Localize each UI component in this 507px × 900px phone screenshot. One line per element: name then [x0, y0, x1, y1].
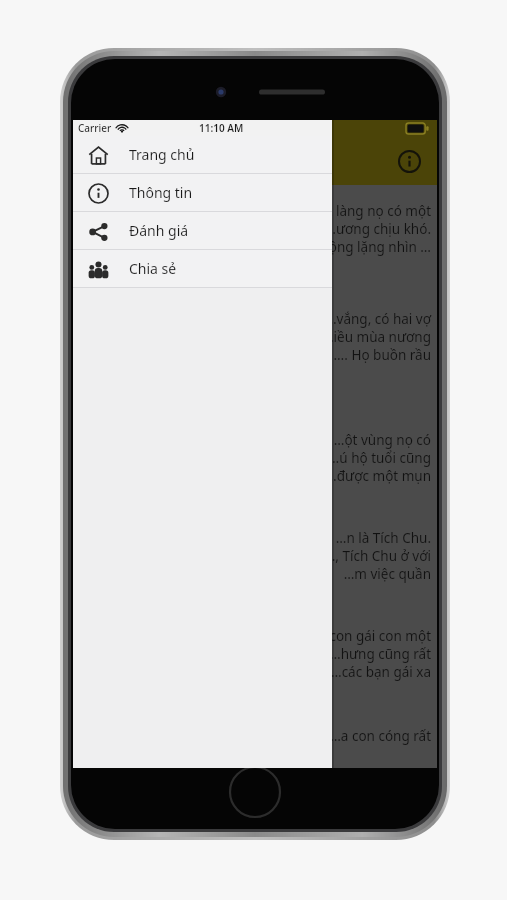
button[interactable]: Information: [387, 139, 431, 183]
staticText: …vắng, có hai vợ: [79, 310, 431, 328]
staticText: Chia sẻ: [129, 259, 177, 278]
button[interactable]: Trang chủ: [73, 136, 332, 173]
staticText: …m việc quần: [79, 565, 431, 583]
button[interactable]: Thông tin: [73, 174, 332, 211]
staticText: …hưng cũng rất: [79, 645, 431, 663]
staticText: 11:10 AM: [199, 121, 244, 135]
button[interactable]: Đánh giá: [73, 212, 332, 249]
staticText: …iều mùa nương: [79, 328, 431, 346]
button[interactable]: Chia sẻ: [73, 250, 332, 287]
staticText: Thông tin: [129, 183, 193, 202]
staticText: …các bạn gái xa: [79, 663, 431, 681]
staticText: …ú hộ tuổi cũng: [79, 449, 431, 467]
staticText: …ương chịu khó.: [79, 220, 431, 238]
staticText: …, Tích Chu ở với: [79, 547, 431, 565]
staticText: …n là Tích Chu.: [79, 529, 431, 547]
staticText: …được một mụn: [79, 467, 431, 485]
staticText: …ộng lặng nhìn …: [79, 238, 431, 256]
staticText: Carrier: [78, 121, 112, 135]
staticText: …ột vùng nọ có: [79, 431, 431, 449]
staticText: Đánh giá: [129, 221, 189, 240]
staticText: …. Họ buồn rầu: [79, 346, 431, 364]
staticText: …con gái con một: [79, 627, 431, 645]
staticText: …a con cóng rất: [79, 727, 431, 745]
staticText: …ột làng nọ có một: [79, 202, 431, 220]
staticText: Trang chủ: [129, 145, 195, 164]
